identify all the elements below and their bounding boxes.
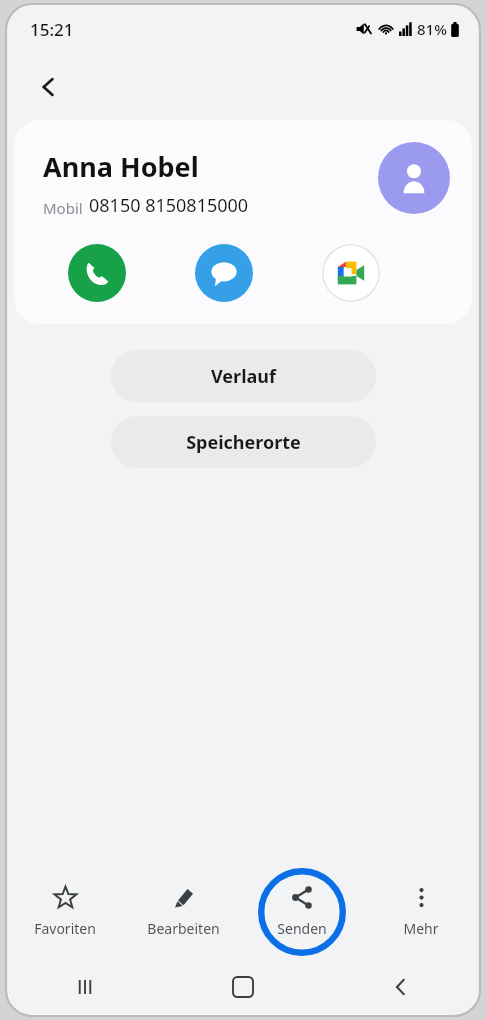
button[interactable]: Back <box>28 66 70 108</box>
staticText: 08150 8150815000 <box>89 193 249 218</box>
button[interactable]: Message <box>195 244 253 302</box>
staticText: Speicherorte <box>186 430 301 455</box>
button[interactable]: Video call with Meet <box>322 244 380 302</box>
button[interactable]: Contact photo <box>378 142 450 214</box>
staticText: 81% <box>417 19 447 39</box>
button[interactable]: Verlauf <box>111 350 376 402</box>
button[interactable]: Favoriten <box>6 866 124 958</box>
staticText: Verlauf <box>211 364 276 389</box>
button[interactable]: Back <box>322 958 480 1016</box>
staticText: Bearbeiten <box>147 919 220 938</box>
staticText: Mehr <box>403 919 439 938</box>
staticText: Mobil <box>43 198 83 218</box>
staticText: 15:21 <box>30 18 74 41</box>
staticText: Favoriten <box>34 919 96 938</box>
button[interactable]: Call <box>68 244 126 302</box>
staticText: Senden <box>277 919 327 938</box>
button[interactable]: Senden <box>242 866 361 958</box>
staticText: Anna Hobel <box>43 148 199 185</box>
button[interactable]: Bearbeiten <box>124 866 242 958</box>
button[interactable]: Speicherorte <box>111 416 376 468</box>
button[interactable]: Mehr <box>361 866 480 958</box>
button[interactable]: Home <box>164 958 322 1016</box>
button[interactable]: Recent apps <box>6 958 164 1016</box>
